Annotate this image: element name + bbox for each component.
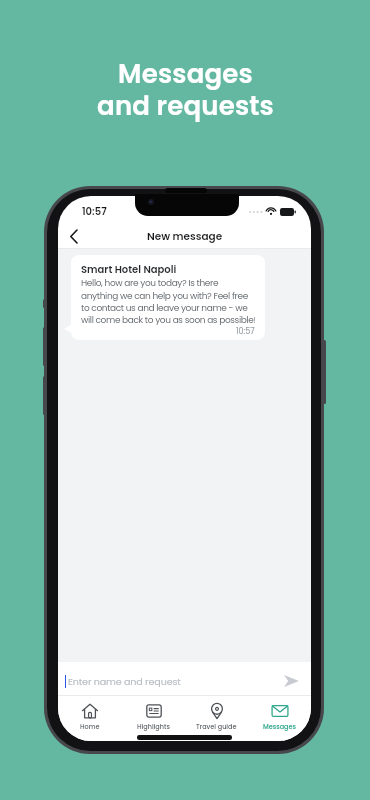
button[interactable]: Highlights [122, 696, 185, 741]
button[interactable]: Travel guide [185, 696, 248, 741]
staticText: New message [147, 229, 223, 244]
button[interactable]: Messages [248, 696, 311, 741]
staticText: Messages [263, 722, 296, 731]
staticText: Travel guide [196, 722, 237, 731]
button[interactable]: New message [58, 224, 311, 248]
staticText: Home [80, 722, 100, 731]
staticText: Hello, how are you today? Is there anyth… [81, 277, 255, 326]
staticText: 10:57 [236, 326, 255, 337]
button[interactable]: Enter name and request [58, 662, 311, 695]
staticText: Smart Hotel Napoli [81, 262, 177, 276]
staticText: Enter name and request [68, 675, 181, 688]
button[interactable]: Home [58, 696, 122, 741]
staticText: Highlights [137, 722, 170, 731]
staticText: 10:57 [82, 204, 107, 218]
staticText: Messages and requests [97, 56, 274, 124]
